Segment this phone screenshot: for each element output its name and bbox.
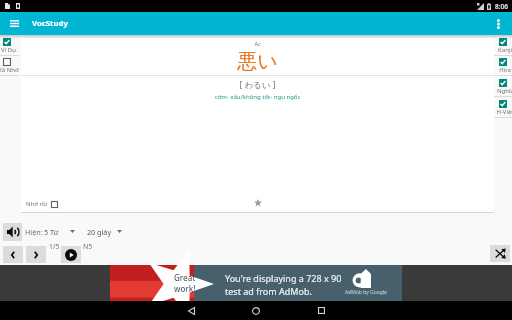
staticText: cờm- xấu/không tốt- ngu ngốc	[21, 93, 494, 101]
staticText: Ác	[21, 40, 494, 48]
staticText: Great	[174, 272, 196, 283]
staticText: You're displaying a 728 x 90	[225, 272, 342, 284]
button[interactable]: More options	[489, 14, 508, 33]
staticText: 5 Từ	[44, 227, 59, 237]
button[interactable]: H-Việt	[494, 99, 512, 119]
button[interactable]: Kanji	[494, 37, 512, 57]
staticText: 8:06	[495, 2, 508, 11]
staticText: Hira	[499, 66, 511, 74]
staticText: AdMob by Google	[345, 289, 387, 296]
staticText: Ví Dụ	[1, 46, 16, 54]
staticText: Kanji	[498, 46, 512, 54]
staticText: VocStudy	[32, 18, 68, 29]
staticText: 1/5	[49, 242, 60, 252]
button[interactable]: Choose word count	[70, 230, 75, 233]
button[interactable]: Next	[26, 246, 46, 263]
button[interactable]: Hira	[494, 57, 512, 77]
button[interactable]: Speak	[3, 223, 22, 241]
button[interactable]: Open navigation drawer	[5, 14, 24, 33]
staticText: Nhớ rồi	[26, 200, 48, 208]
button[interactable]: Recent apps	[308, 301, 334, 320]
staticText: 悪い	[21, 49, 494, 74]
staticText: test ad from AdMob.	[225, 285, 312, 297]
staticText: 20 giây	[87, 227, 112, 237]
button[interactable]: Nghĩa	[494, 78, 512, 98]
staticText: Hiện:	[25, 227, 43, 237]
button[interactable]: Nhớ rồi	[26, 200, 58, 208]
button[interactable]: Shuffle	[490, 245, 510, 262]
button[interactable]: Favourite	[252, 197, 264, 209]
button[interactable]: Home	[243, 301, 269, 320]
staticText: N5	[83, 242, 93, 252]
button[interactable]: Previous	[3, 246, 23, 263]
button[interactable]: Back	[178, 301, 204, 320]
staticText: Nghĩa	[497, 87, 512, 95]
staticText: H-Việt	[496, 108, 512, 116]
button[interactable]: Choose duration	[117, 230, 122, 233]
staticText: [ わるい ]	[21, 79, 494, 91]
button[interactable]: Ví Dụ	[0, 37, 21, 57]
staticText: work!	[174, 283, 196, 294]
button[interactable]: Đã Nhớ	[0, 57, 21, 77]
button[interactable]: Play	[61, 246, 81, 263]
button[interactable]: Advertisement	[0, 265, 512, 301]
staticText: Đã Nhớ	[0, 66, 19, 74]
